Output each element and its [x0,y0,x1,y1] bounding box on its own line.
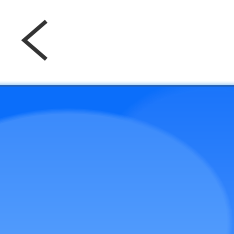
button[interactable]: Back [10,16,58,64]
